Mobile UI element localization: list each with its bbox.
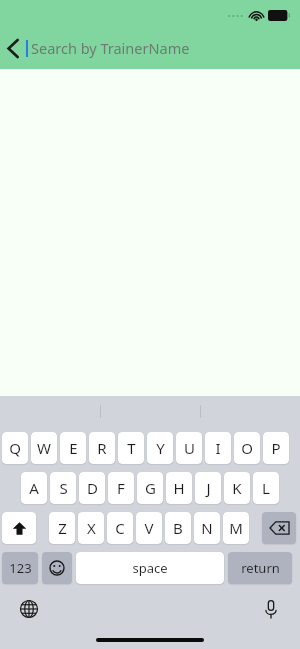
- staticText: V: [144, 518, 154, 538]
- staticText: F: [117, 478, 125, 498]
- staticText: A: [29, 478, 39, 498]
- button[interactable]: R: [89, 432, 115, 464]
- staticText: B: [173, 518, 183, 538]
- button[interactable]: H: [166, 472, 192, 504]
- staticText: O: [241, 438, 253, 458]
- button[interactable]: T: [118, 432, 144, 464]
- button[interactable]: Backspace: [262, 512, 296, 544]
- staticText: Y: [156, 438, 165, 458]
- staticText: H: [173, 478, 185, 498]
- button[interactable]: Shift: [2, 512, 36, 544]
- button[interactable]: return: [228, 552, 292, 584]
- staticText: G: [145, 478, 156, 498]
- button[interactable]: 123: [2, 552, 38, 584]
- button[interactable]: Q: [2, 432, 28, 464]
- button[interactable]: V: [136, 512, 162, 544]
- button[interactable]: K: [224, 472, 250, 504]
- button[interactable]: I: [205, 432, 231, 464]
- button[interactable]: W: [31, 432, 57, 464]
- button[interactable]: M: [223, 512, 249, 544]
- staticText: J: [206, 478, 211, 498]
- button[interactable]: L: [253, 472, 279, 504]
- button[interactable]: Y: [147, 432, 173, 464]
- button[interactable]: E: [60, 432, 86, 464]
- button[interactable]: D: [79, 472, 105, 504]
- staticText: C: [115, 518, 125, 538]
- staticText: E: [69, 438, 78, 458]
- staticText: U: [184, 438, 195, 458]
- button[interactable]: Emoji: [42, 552, 72, 584]
- button[interactable]: A: [21, 472, 47, 504]
- button[interactable]: U: [176, 432, 202, 464]
- staticText: M: [229, 518, 243, 538]
- staticText: 123: [9, 559, 32, 577]
- staticText: X: [87, 518, 96, 538]
- button[interactable]: Back: [0, 33, 26, 63]
- button[interactable]: C: [107, 512, 133, 544]
- button[interactable]: Z: [49, 512, 75, 544]
- staticText: Search by TrainerName: [31, 38, 190, 58]
- staticText: P: [271, 438, 281, 458]
- staticText: T: [127, 438, 136, 458]
- staticText: Z: [58, 518, 67, 538]
- staticText: Q: [9, 438, 21, 458]
- button[interactable]: Change keyboard language: [14, 594, 44, 624]
- button[interactable]: F: [108, 472, 134, 504]
- button[interactable]: G: [137, 472, 163, 504]
- staticText: D: [87, 478, 98, 498]
- button[interactable]: Dictation: [256, 594, 286, 624]
- button[interactable]: B: [165, 512, 191, 544]
- button[interactable]: S: [50, 472, 76, 504]
- button[interactable]: P: [263, 432, 289, 464]
- staticText: I: [215, 438, 221, 458]
- button[interactable]: Search by TrainerName: [31, 33, 300, 63]
- staticText: S: [59, 478, 68, 498]
- button[interactable]: O: [234, 432, 260, 464]
- button[interactable]: space: [76, 552, 224, 584]
- staticText: L: [262, 478, 270, 498]
- staticText: N: [201, 518, 213, 538]
- button[interactable]: X: [78, 512, 104, 544]
- staticText: W: [37, 438, 51, 458]
- staticText: return: [241, 559, 280, 577]
- staticText: K: [232, 478, 242, 498]
- button[interactable]: J: [195, 472, 221, 504]
- button[interactable]: N: [194, 512, 220, 544]
- staticText: space: [132, 559, 168, 577]
- staticText: R: [97, 438, 107, 458]
